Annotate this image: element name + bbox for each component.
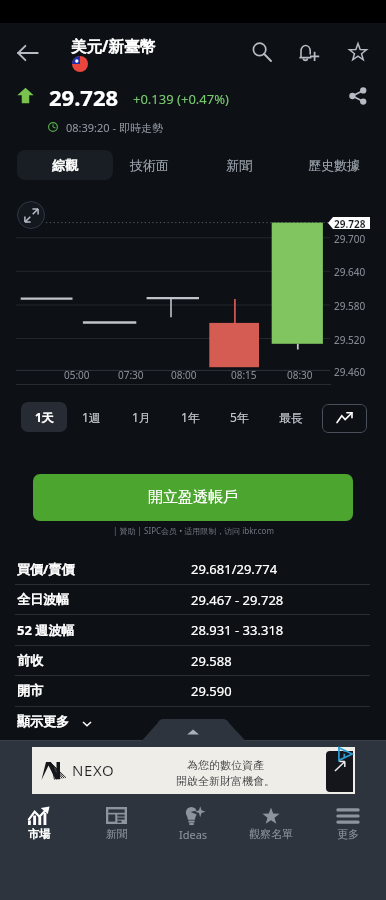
button[interactable]: 1年: [167, 402, 213, 432]
staticText: 1天: [35, 409, 54, 425]
button[interactable]: 市場: [0, 798, 78, 846]
staticText: 29.681/29.774: [191, 560, 278, 578]
button[interactable]: Advertisement: [32, 747, 355, 794]
button[interactable]: 1週: [68, 402, 114, 432]
staticText: 1年: [181, 409, 200, 425]
button[interactable]: 綜觀: [17, 150, 113, 180]
button[interactable]: 最長: [268, 402, 314, 432]
staticText: 更多: [337, 827, 359, 841]
staticText: 歷史數據: [308, 157, 360, 173]
staticText: Ideas: [179, 827, 208, 842]
staticText: 市場: [28, 827, 50, 841]
button[interactable]: 歷史數據: [286, 150, 382, 180]
staticText: 08:00: [171, 368, 197, 382]
button[interactable]: Share: [343, 81, 373, 111]
button[interactable]: Ideas: [155, 798, 232, 846]
button[interactable]: 52 週波幅: [0, 613, 386, 644]
button[interactable]: 買價/賣價: [0, 552, 386, 583]
staticText: 美元/新臺幣: [71, 35, 155, 56]
staticText: 07:30: [118, 368, 144, 382]
staticText: 29.728: [49, 82, 119, 112]
staticText: 08:15: [231, 368, 257, 382]
staticText: 顯示更多: [17, 713, 69, 729]
button[interactable]: 1天: [21, 402, 67, 432]
staticText: 29.580: [334, 299, 366, 313]
button[interactable]: Add to watchlist: [337, 31, 379, 73]
staticText: 1月: [132, 409, 151, 425]
staticText: 新聞: [226, 157, 252, 173]
button[interactable]: 5年: [216, 402, 262, 432]
staticText: | 贊助 | SIPC会员 • 适用限制，访问 ibkr.com: [113, 525, 274, 536]
staticText: 29.520: [334, 333, 366, 347]
staticText: 觀察名單: [249, 827, 293, 841]
staticText: NEXO: [72, 760, 115, 780]
button[interactable]: 更多: [309, 798, 386, 846]
staticText: 最長: [279, 410, 303, 425]
button[interactable]: 前收: [0, 644, 386, 675]
button[interactable]: 觀察名單: [232, 798, 309, 846]
button[interactable]: 新聞: [78, 798, 155, 846]
staticText: 開啟全新財富機會。: [176, 774, 275, 788]
button[interactable]: 技術面: [101, 150, 197, 180]
staticText: 1週: [82, 409, 101, 425]
staticText: 08:30: [287, 368, 313, 382]
staticText: 29.700: [334, 232, 366, 246]
staticText: 5年: [230, 409, 249, 425]
button[interactable]: 開立盈透帳戶: [33, 474, 353, 521]
staticText: 買價/賣價: [17, 560, 75, 578]
button[interactable]: 顯示更多: [0, 705, 386, 736]
staticText: 開市: [17, 682, 43, 698]
staticText: 29.460: [334, 365, 366, 379]
button[interactable]: Fullscreen chart: [17, 201, 45, 229]
staticText: 技術面: [130, 157, 169, 173]
button[interactable]: 1月: [118, 402, 164, 432]
button[interactable]: 新聞: [195, 150, 283, 180]
staticText: 29.588: [191, 652, 232, 670]
staticText: 29.728: [334, 217, 366, 229]
staticText: 開立盈透帳戶: [148, 488, 238, 507]
staticText: 28.931 - 33.318: [191, 621, 284, 639]
button[interactable]: Create alert: [288, 31, 330, 73]
staticText: 52 週波幅: [17, 621, 75, 639]
staticText: 前收: [17, 652, 43, 668]
staticText: 29.467 - 29.728: [191, 591, 284, 609]
staticText: 為您的數位資產: [187, 758, 264, 772]
button[interactable]: 開市: [0, 674, 386, 705]
staticText: +0.139 (+0.47%): [133, 90, 229, 108]
staticText: 29.640: [334, 265, 366, 279]
staticText: 08:39:20 - 即時走勢: [66, 120, 163, 135]
button[interactable]: Chart type: [322, 404, 367, 433]
staticText: 綜觀: [52, 157, 78, 173]
button[interactable]: 全日波幅: [0, 583, 386, 614]
staticText: 新聞: [106, 827, 128, 841]
staticText: 全日波幅: [17, 591, 69, 607]
staticText: 05:00: [64, 368, 90, 382]
staticText: 29.590: [191, 682, 232, 700]
button[interactable]: Back: [6, 31, 50, 75]
button[interactable]: Search: [241, 31, 283, 73]
